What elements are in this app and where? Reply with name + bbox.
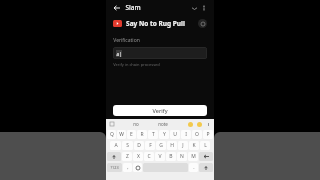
staticText: .	[193, 164, 195, 171]
button[interactable]: P	[203, 130, 213, 139]
staticText: a|	[116, 51, 122, 57]
button[interactable]: Backspace	[199, 152, 213, 161]
staticText: X	[137, 153, 140, 160]
staticText: G	[159, 142, 163, 149]
button[interactable]: T	[148, 130, 158, 139]
button[interactable]: M	[188, 152, 198, 161]
staticText: T	[152, 131, 155, 138]
button[interactable]: R	[137, 130, 147, 139]
staticText: S	[126, 142, 129, 149]
button[interactable]: a|	[113, 47, 207, 59]
button[interactable]: More options	[199, 3, 209, 13]
staticText: P	[206, 131, 210, 138]
staticText: ?123	[110, 165, 119, 170]
button[interactable]: B	[166, 152, 176, 161]
button[interactable]: Sticker	[196, 121, 202, 127]
staticText: U	[173, 131, 177, 138]
button[interactable]: H	[167, 141, 177, 150]
button[interactable]: YouTube	[113, 20, 122, 27]
button[interactable]: E	[127, 130, 136, 139]
button[interactable]: J	[178, 141, 188, 150]
staticText: J	[182, 142, 184, 149]
button[interactable]: Enter	[199, 163, 213, 172]
button[interactable]: C	[144, 152, 154, 161]
staticText: Say No to Rug Pull	[126, 19, 185, 28]
staticText: note	[158, 121, 168, 127]
staticText: H	[170, 142, 174, 149]
button[interactable]: Clipboard	[109, 121, 115, 127]
staticText: F	[149, 142, 152, 149]
button[interactable]: A	[110, 141, 121, 150]
staticText: W	[119, 131, 124, 138]
staticText: Slam	[125, 3, 141, 12]
button[interactable]: X	[133, 152, 143, 161]
button[interactable]: K	[189, 141, 199, 150]
staticText: C	[147, 153, 151, 160]
button[interactable]: N	[177, 152, 187, 161]
button[interactable]: F	[145, 141, 155, 150]
staticText: E	[130, 131, 133, 138]
button[interactable]: Back	[111, 2, 122, 13]
staticText: R	[140, 131, 144, 138]
staticText: M	[191, 153, 196, 160]
button[interactable]: O	[192, 130, 202, 139]
button[interactable]: I	[181, 130, 191, 139]
button[interactable]: G	[156, 141, 166, 150]
staticText: Z	[126, 153, 129, 160]
staticText: D	[137, 142, 141, 149]
button[interactable]: Verify	[113, 105, 207, 116]
staticText: Q	[110, 131, 114, 138]
button[interactable]: Play video	[198, 19, 207, 28]
staticText: K	[192, 142, 196, 149]
button[interactable]: Keyboard settings	[205, 121, 211, 127]
staticText: Verify in chain processed	[113, 62, 160, 67]
staticText: ,	[127, 164, 129, 171]
button[interactable]: W	[117, 130, 126, 139]
staticText: V	[158, 153, 162, 160]
button[interactable]: D	[134, 141, 144, 150]
staticText: L	[204, 142, 207, 149]
button[interactable]: Expand	[189, 3, 199, 13]
staticText: A	[114, 142, 118, 149]
button[interactable]: Q	[107, 130, 116, 139]
button[interactable]: Shift	[107, 152, 121, 161]
staticText: Verify	[152, 107, 168, 114]
staticText: O	[195, 131, 199, 138]
staticText: Verification	[113, 37, 140, 44]
button[interactable]: S	[122, 141, 133, 150]
button[interactable]: ,	[123, 163, 132, 172]
button[interactable]: V	[155, 152, 165, 161]
button[interactable]: ?123	[107, 163, 122, 172]
button[interactable]: Emoji	[187, 121, 193, 127]
staticText: Y	[163, 131, 166, 138]
button[interactable]: Z	[122, 152, 132, 161]
button[interactable]: U	[170, 130, 180, 139]
staticText: I	[185, 131, 187, 138]
staticText: no	[133, 121, 139, 127]
staticText: B	[169, 153, 173, 160]
button[interactable]: .	[189, 163, 198, 172]
staticText: N	[180, 153, 184, 160]
button[interactable]: Y	[159, 130, 169, 139]
button[interactable]: L	[200, 141, 210, 150]
button[interactable]: Emoji keyboard	[133, 163, 142, 172]
